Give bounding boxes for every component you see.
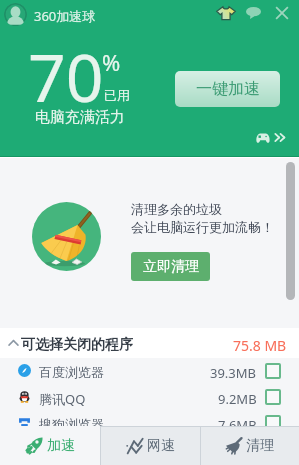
button[interactable]: 加速: [0, 426, 100, 465]
staticText: 70: [28, 31, 104, 121]
staticText: 已用: [104, 87, 130, 103]
staticText: 7.6MB: [218, 416, 257, 432]
button[interactable]: 立即清理: [131, 252, 210, 281]
button[interactable]: 网速: [100, 426, 200, 465]
button[interactable]: Skin: [216, 6, 236, 20]
staticText: 360加速球: [34, 7, 96, 25]
staticText: 清理: [246, 437, 274, 455]
staticText: 9.2MB: [218, 390, 257, 408]
button[interactable]: 腾讯QQ: [0, 384, 299, 410]
button[interactable]: 百度浏览器: [0, 358, 299, 384]
staticText: %: [102, 47, 121, 77]
staticText: 百度浏览器: [39, 364, 104, 380]
staticText: 加速: [47, 437, 75, 455]
staticText: 会让电脑运行更加流畅！: [131, 219, 274, 235]
staticText: 一键加速: [196, 79, 260, 99]
staticText: 网速: [147, 437, 175, 455]
staticText: 电脑充满活力: [35, 108, 125, 127]
staticText: 39.3MB: [210, 364, 257, 382]
staticText: 立即清理: [143, 258, 199, 276]
button[interactable]: Select 搜狗浏览器: [267, 417, 279, 429]
button[interactable]: 一键加速: [175, 71, 280, 107]
button[interactable]: Close: [275, 6, 289, 20]
staticText: 75.8 MB: [233, 336, 287, 355]
button[interactable]: 搜狗浏览器: [0, 410, 299, 426]
staticText: 清理多余的垃圾: [131, 201, 222, 217]
button[interactable]: Messages: [246, 7, 261, 19]
button[interactable]: 清理: [200, 426, 299, 465]
button[interactable]: Game mode: [253, 130, 287, 145]
staticText: 可选择关闭的程序: [21, 336, 133, 354]
button[interactable]: Account: [4, 3, 27, 26]
button[interactable]: 可选择关闭的程序: [0, 328, 299, 358]
staticText: 搜狗浏览器: [39, 416, 104, 432]
staticText: 腾讯QQ: [39, 390, 86, 408]
